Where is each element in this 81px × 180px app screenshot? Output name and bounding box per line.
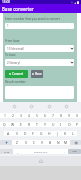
button[interactable]: 2 xyxy=(9,113,17,118)
staticText: Z xyxy=(16,140,18,145)
button[interactable]: suggestion 1 xyxy=(29,104,34,109)
staticText: 9 xyxy=(68,113,70,118)
button[interactable]: K xyxy=(61,131,69,136)
button[interactable]: 3 xyxy=(17,113,25,118)
button[interactable]: suggestion 3 xyxy=(64,104,69,109)
button[interactable]: 5 xyxy=(33,113,41,118)
staticText: Reset xyxy=(35,72,42,76)
staticText: V xyxy=(41,140,44,145)
button[interactable]: 0 xyxy=(73,113,81,118)
button[interactable]: C xyxy=(30,140,38,145)
staticText: Base converter xyxy=(2,6,34,12)
button[interactable]: W xyxy=(9,122,17,127)
staticText: 5 xyxy=(36,113,38,118)
staticText: ?123 xyxy=(4,150,10,153)
staticText: 10 (decimal) xyxy=(7,47,25,51)
staticText: G xyxy=(40,131,43,136)
button[interactable]: L xyxy=(69,131,77,136)
button[interactable]: E xyxy=(17,122,25,127)
button[interactable]: Q xyxy=(0,122,9,127)
staticText: S xyxy=(16,131,18,136)
button[interactable]: 7 xyxy=(49,113,57,118)
button[interactable]: I xyxy=(57,122,65,127)
staticText: C xyxy=(33,140,36,145)
staticText: T xyxy=(36,122,38,127)
staticText: O xyxy=(68,122,71,127)
button[interactable]: T xyxy=(33,122,41,127)
button[interactable]: Next xyxy=(68,149,81,154)
staticText: . xyxy=(64,150,65,154)
button[interactable]: English (US) xyxy=(21,149,60,154)
staticText: 3 xyxy=(20,113,22,118)
button[interactable]: X xyxy=(21,140,30,145)
button[interactable]: 4 xyxy=(25,113,33,118)
button[interactable]: U xyxy=(49,122,57,127)
staticText: Enter number that you want to convert xyxy=(5,17,60,21)
staticText: A xyxy=(7,131,10,136)
staticText: From base xyxy=(5,39,20,43)
button[interactable]: F xyxy=(29,131,37,136)
staticText: W xyxy=(11,122,15,127)
button[interactable]: 1 xyxy=(0,113,9,118)
button[interactable]: B xyxy=(46,140,54,145)
button[interactable]: A xyxy=(4,131,13,136)
button[interactable]: N xyxy=(54,140,62,145)
button[interactable]: Reset xyxy=(31,70,43,78)
button[interactable]: J xyxy=(53,131,61,136)
button[interactable]: . xyxy=(60,149,68,154)
staticText: J xyxy=(57,131,58,136)
button[interactable]: D xyxy=(21,131,29,136)
staticText: L xyxy=(72,131,74,136)
staticText: R xyxy=(28,122,31,127)
button[interactable]: O xyxy=(65,122,73,127)
button[interactable]: 10 (decimal) xyxy=(5,45,74,52)
staticText: P xyxy=(76,122,79,127)
staticText: I xyxy=(60,122,62,127)
staticText: E xyxy=(20,122,22,127)
button[interactable]: P xyxy=(73,122,81,127)
staticText: F xyxy=(32,131,34,136)
staticText: , xyxy=(17,150,18,154)
staticText: 1 xyxy=(7,24,9,28)
staticText: English (US) xyxy=(34,150,48,153)
staticText: To base xyxy=(5,53,16,57)
button[interactable]: , xyxy=(13,149,21,154)
staticText: K xyxy=(64,131,67,136)
staticText: Convert xyxy=(12,72,24,76)
button[interactable]: G xyxy=(37,131,45,136)
button[interactable]: 8 xyxy=(57,113,65,118)
button[interactable]: Backspace xyxy=(70,140,81,145)
staticText: 0 xyxy=(76,113,78,118)
button[interactable]: Convert xyxy=(5,70,28,78)
staticText: B xyxy=(49,140,52,145)
staticText: 1 xyxy=(4,113,6,118)
button[interactable]: M xyxy=(62,140,70,145)
staticText: 7 xyxy=(52,113,54,118)
button[interactable]: Shift xyxy=(0,140,12,145)
button[interactable]: ?123 xyxy=(0,149,13,154)
staticText: 4 xyxy=(28,113,30,118)
button[interactable]: Z xyxy=(12,140,21,145)
staticText: 8 xyxy=(60,113,62,118)
button[interactable]: H xyxy=(45,131,53,136)
staticText: Y xyxy=(44,122,46,127)
staticText: U xyxy=(52,122,55,127)
staticText: X xyxy=(25,140,27,145)
button[interactable]: S xyxy=(13,131,21,136)
button[interactable]: suggestion 2 xyxy=(47,104,52,109)
button[interactable]: Y xyxy=(41,122,49,127)
staticText: 18:00 xyxy=(2,0,11,4)
button[interactable]: 9 xyxy=(65,113,73,118)
staticText: D xyxy=(24,131,27,136)
staticText: Next xyxy=(72,150,77,153)
button[interactable]: 2 (binary) xyxy=(5,59,74,66)
button[interactable]: Home xyxy=(39,159,43,163)
button[interactable]: suggestion 0 xyxy=(12,104,17,109)
button[interactable]: V xyxy=(38,140,46,145)
button[interactable]: 1 xyxy=(5,23,74,29)
staticText: M xyxy=(64,140,68,145)
staticText: Q xyxy=(3,122,6,127)
button[interactable]: R xyxy=(25,122,33,127)
button[interactable]: 6 xyxy=(41,113,49,118)
